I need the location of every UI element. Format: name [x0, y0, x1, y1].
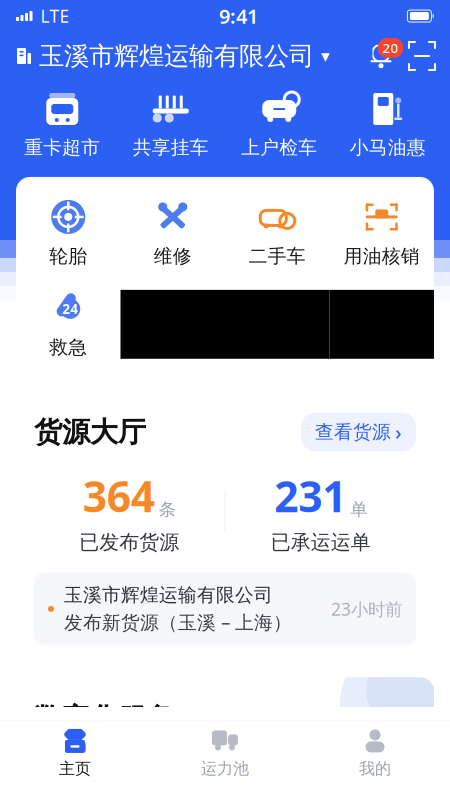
staticText: ›: [395, 419, 402, 445]
staticText: 救急: [49, 336, 87, 359]
button[interactable]: 24: [16, 290, 120, 359]
staticText: 轮胎: [49, 245, 87, 268]
staticText: 已发布货源: [79, 530, 179, 555]
button[interactable]: 上户检车: [225, 90, 333, 159]
staticText: 数字化服务: [34, 701, 174, 736]
button[interactable]: 重卡超市: [8, 90, 116, 159]
staticText: 玉溪市辉煌运输有限公司: [39, 40, 314, 71]
staticText: 我的: [359, 759, 391, 779]
button[interactable]: 玉溪市辉煌运输有限公司: [16, 40, 330, 71]
staticText: 货源大厅: [34, 415, 146, 449]
staticText: 共享挂车: [133, 136, 209, 159]
button[interactable]: 我的: [300, 721, 450, 779]
staticText: 用油核销: [344, 245, 420, 268]
staticText: 364: [83, 467, 155, 524]
button[interactable]: 扫一扫: [396, 44, 434, 68]
staticText: ▾: [321, 46, 330, 66]
staticText: 重卡超市: [24, 136, 100, 159]
staticText: 主页: [59, 759, 91, 779]
button[interactable]: 轮胎: [16, 199, 120, 268]
staticText: 23小时前: [331, 597, 402, 620]
button[interactable]: 维修: [120, 199, 225, 268]
button[interactable]: 通知: [366, 41, 396, 71]
staticText: 查看货源: [315, 421, 391, 443]
staticText: 维修: [154, 245, 192, 268]
staticText: 24: [62, 300, 78, 318]
staticText: 已承运运单: [271, 530, 371, 555]
staticText: 20: [382, 39, 398, 57]
staticText: 玉溪市辉煌运输有限公司: [64, 584, 273, 606]
button[interactable]: 二手车: [225, 199, 329, 268]
staticText: 上户检车: [241, 136, 317, 159]
button[interactable]: 运力池: [150, 721, 300, 779]
staticText: 条: [159, 499, 176, 520]
staticText: LTE: [40, 4, 69, 27]
button[interactable]: 小马油惠: [333, 90, 442, 159]
staticText: 小马油惠: [350, 136, 426, 159]
staticText: 9:41: [219, 3, 258, 29]
staticText: 运力池: [201, 759, 249, 779]
staticText: 发布新货源（玉溪 – 上海）: [64, 609, 292, 634]
button[interactable]: 用油核销: [329, 199, 434, 268]
button[interactable]: 查看货源: [301, 413, 416, 451]
button[interactable]: 主页: [0, 721, 150, 779]
staticText: 二手车: [249, 245, 306, 268]
staticText: 231: [274, 467, 346, 524]
button[interactable]: 共享挂车: [116, 90, 225, 159]
button[interactable]: 玉溪市辉煌运输有限公司: [34, 573, 416, 645]
staticText: 单: [350, 499, 367, 520]
